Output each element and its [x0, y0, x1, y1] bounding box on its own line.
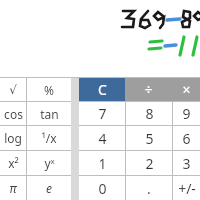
button[interactable]: e [27, 176, 71, 200]
staticText: . [147, 179, 151, 198]
staticText: % [44, 82, 54, 98]
button[interactable]: x² [0, 151, 26, 175]
staticText: ¹/x [41, 130, 57, 146]
staticText: C [98, 80, 107, 99]
staticText: 6 [182, 129, 191, 148]
button[interactable]: √ [0, 78, 26, 101]
button[interactable]: π [0, 176, 26, 200]
button[interactable]: 1 [79, 151, 125, 175]
staticText: 9 [182, 104, 191, 123]
button[interactable]: 2 [126, 151, 172, 175]
button[interactable]: 8 [126, 102, 172, 125]
staticText: π [9, 180, 17, 196]
staticText: yˣ [44, 155, 55, 171]
staticText: 1 [98, 154, 107, 173]
button[interactable]: . [126, 176, 172, 200]
staticText: e [46, 180, 52, 196]
staticText: × [182, 80, 191, 99]
staticText: 7 [98, 104, 107, 123]
button[interactable]: cos [0, 102, 26, 125]
button[interactable]: C [79, 78, 125, 101]
button[interactable]: 5 [126, 126, 172, 150]
staticText: 5 [145, 129, 154, 148]
button[interactable]: ¹/x [27, 126, 71, 150]
button[interactable]: 0 [79, 176, 125, 200]
button[interactable]: × [172, 78, 200, 101]
button[interactable]: 4 [79, 126, 125, 150]
button[interactable]: yˣ [27, 151, 71, 175]
staticText: 4 [98, 129, 107, 148]
staticText: 3 [182, 154, 191, 173]
staticText: 2 [145, 154, 154, 173]
staticText: log [4, 130, 22, 146]
staticText: x² [8, 155, 19, 171]
button[interactable]: % [27, 78, 71, 101]
staticText: 0 [98, 179, 107, 198]
button[interactable]: tan [27, 102, 71, 125]
button[interactable]: 6 [173, 126, 200, 150]
staticText: cos [4, 106, 23, 122]
staticText: tan [40, 106, 59, 122]
button[interactable]: 3 [173, 151, 200, 175]
button[interactable]: 9 [173, 102, 200, 125]
staticText: 8 [145, 104, 154, 123]
button[interactable]: ÷ [125, 78, 172, 101]
button[interactable]: +/- [173, 176, 200, 200]
button[interactable]: Handwriting input area [0, 0, 200, 77]
button[interactable]: log [0, 126, 26, 150]
staticText: ÷ [144, 80, 153, 99]
button[interactable]: 7 [79, 102, 125, 125]
staticText: √ [9, 83, 17, 97]
staticText: +/- [178, 179, 196, 198]
